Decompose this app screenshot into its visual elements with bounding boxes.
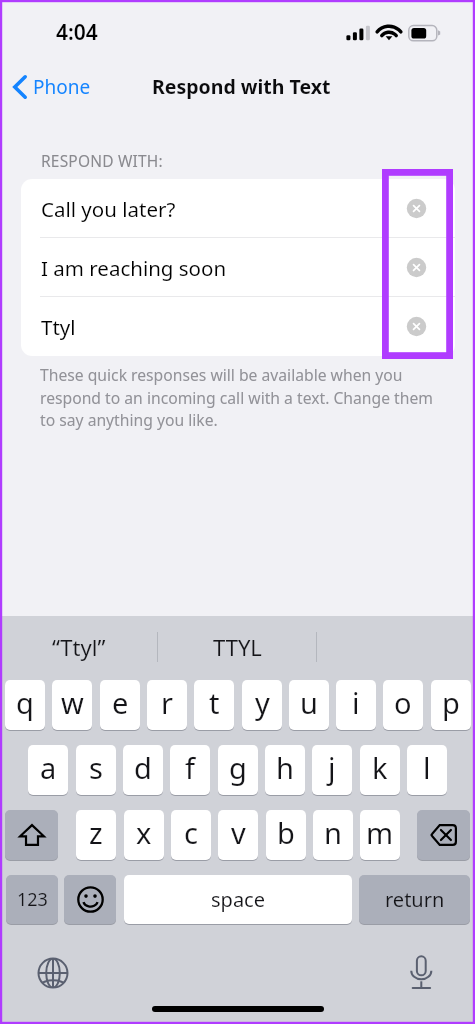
button[interactable]: 123 xyxy=(6,875,58,924)
button[interactable]: Emoji keyboard xyxy=(64,875,116,924)
button[interactable]: w xyxy=(52,680,92,730)
button[interactable]: l xyxy=(407,745,447,795)
button[interactable]: Delete response xyxy=(404,255,429,280)
button[interactable]: g xyxy=(218,745,258,795)
staticText: v xyxy=(231,813,246,852)
button[interactable]: Shift xyxy=(5,810,58,860)
button[interactable]: j xyxy=(312,745,352,795)
staticText: r xyxy=(161,683,173,722)
button[interactable]: “Ttyl” xyxy=(0,632,157,662)
button[interactable]: d xyxy=(123,745,163,795)
button[interactable]: u xyxy=(289,680,329,730)
staticText: e xyxy=(112,683,129,722)
staticText: o xyxy=(394,683,412,722)
button[interactable]: Phone xyxy=(8,69,96,105)
button[interactable]: p xyxy=(431,680,471,730)
staticText: l xyxy=(423,748,431,787)
button[interactable] xyxy=(317,632,475,662)
staticText: q xyxy=(16,683,34,722)
button[interactable]: Change keyboard xyxy=(36,956,70,990)
staticText: g xyxy=(229,748,247,787)
staticText: s xyxy=(89,748,103,787)
button[interactable]: v xyxy=(218,810,258,860)
button[interactable]: return xyxy=(359,875,470,924)
button[interactable]: Call you later? xyxy=(21,179,455,238)
staticText: n xyxy=(324,813,342,852)
staticText: I am reaching soon xyxy=(41,254,227,282)
button[interactable]: s xyxy=(76,745,116,795)
staticText: k xyxy=(372,748,388,787)
staticText: j xyxy=(328,748,336,787)
staticText: y xyxy=(255,683,270,722)
staticText: TTYL xyxy=(213,632,262,662)
button[interactable]: Backspace xyxy=(417,810,470,860)
button[interactable]: q xyxy=(5,680,45,730)
button[interactable]: n xyxy=(313,810,353,860)
staticText: w xyxy=(61,683,84,722)
staticText: u xyxy=(300,683,318,722)
button[interactable]: o xyxy=(383,680,423,730)
button[interactable]: z xyxy=(76,810,116,860)
staticText: d xyxy=(134,748,152,787)
button[interactable]: m xyxy=(360,810,400,860)
button[interactable]: b xyxy=(266,810,306,860)
staticText: c xyxy=(184,813,198,852)
staticText: p xyxy=(442,683,460,722)
staticText: “Ttyl” xyxy=(52,632,106,662)
button[interactable]: Delete response xyxy=(404,196,429,221)
button[interactable]: h xyxy=(265,745,305,795)
button[interactable]: Delete response xyxy=(404,314,429,339)
button[interactable]: c xyxy=(171,810,211,860)
button[interactable]: i xyxy=(336,680,376,730)
button[interactable]: space xyxy=(124,875,352,924)
button[interactable]: Ttyl xyxy=(21,297,455,356)
staticText: space xyxy=(211,886,265,913)
button[interactable]: e xyxy=(100,680,140,730)
staticText: t xyxy=(209,683,220,722)
staticText: Ttyl xyxy=(41,313,76,341)
staticText: b xyxy=(277,813,295,852)
staticText: Respond with Text xyxy=(152,73,331,100)
staticText: 4:04 xyxy=(56,18,98,47)
staticText: f xyxy=(185,748,195,787)
staticText: Phone xyxy=(33,74,91,100)
button[interactable]: a xyxy=(28,745,68,795)
staticText: m xyxy=(366,813,394,852)
button[interactable]: Dictate xyxy=(409,954,434,990)
button[interactable]: r xyxy=(147,680,187,730)
staticText: z xyxy=(89,813,103,852)
button[interactable]: I am reaching soon xyxy=(21,238,455,297)
button[interactable]: f xyxy=(170,745,210,795)
staticText: Call you later? xyxy=(41,195,176,223)
staticText: return xyxy=(385,886,445,913)
staticText: These quick responses will be available … xyxy=(40,364,436,430)
staticText: i xyxy=(352,683,360,722)
staticText: a xyxy=(40,748,57,787)
staticText: x xyxy=(136,813,152,852)
staticText: h xyxy=(276,748,294,787)
button[interactable]: k xyxy=(360,745,400,795)
button[interactable]: y xyxy=(242,680,282,730)
staticText: 123 xyxy=(17,887,48,912)
button[interactable]: t xyxy=(194,680,234,730)
button[interactable]: TTYL xyxy=(158,632,316,662)
button[interactable]: x xyxy=(124,810,164,860)
staticText: RESPOND WITH: xyxy=(41,150,163,171)
